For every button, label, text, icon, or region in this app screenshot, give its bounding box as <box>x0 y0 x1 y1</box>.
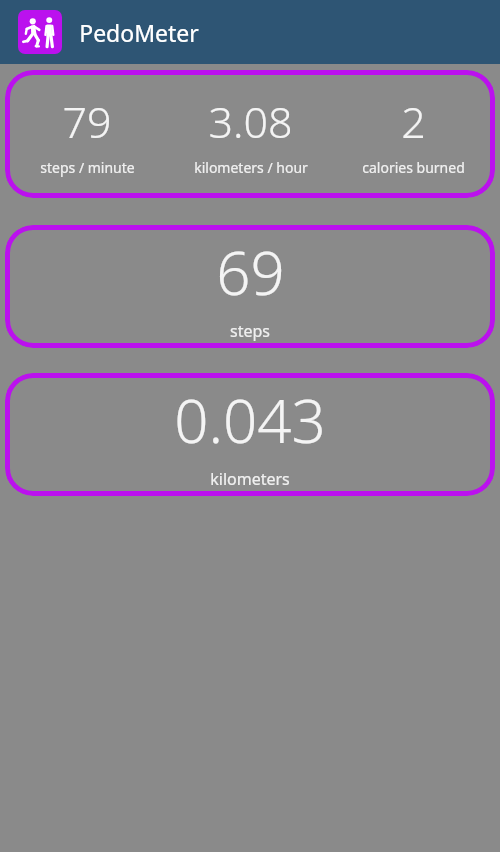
button[interactable]: 69 <box>5 225 495 348</box>
staticText: 3.08 <box>208 92 293 151</box>
button[interactable]: 79 <box>5 70 495 198</box>
staticText: 69 <box>216 231 285 313</box>
button[interactable]: 0.043 <box>5 373 495 496</box>
staticText: steps / minute <box>40 158 135 177</box>
staticText: PedoMeter <box>79 17 199 48</box>
staticText: 2 <box>401 92 426 151</box>
button[interactable]: PedoMeter <box>18 10 62 54</box>
staticText: kilometers / hour <box>194 158 308 177</box>
staticText: 0.043 <box>174 379 326 461</box>
staticText: kilometers <box>210 468 290 490</box>
staticText: 79 <box>62 92 112 151</box>
staticText: calories burned <box>362 158 465 177</box>
staticText: steps <box>230 320 270 342</box>
